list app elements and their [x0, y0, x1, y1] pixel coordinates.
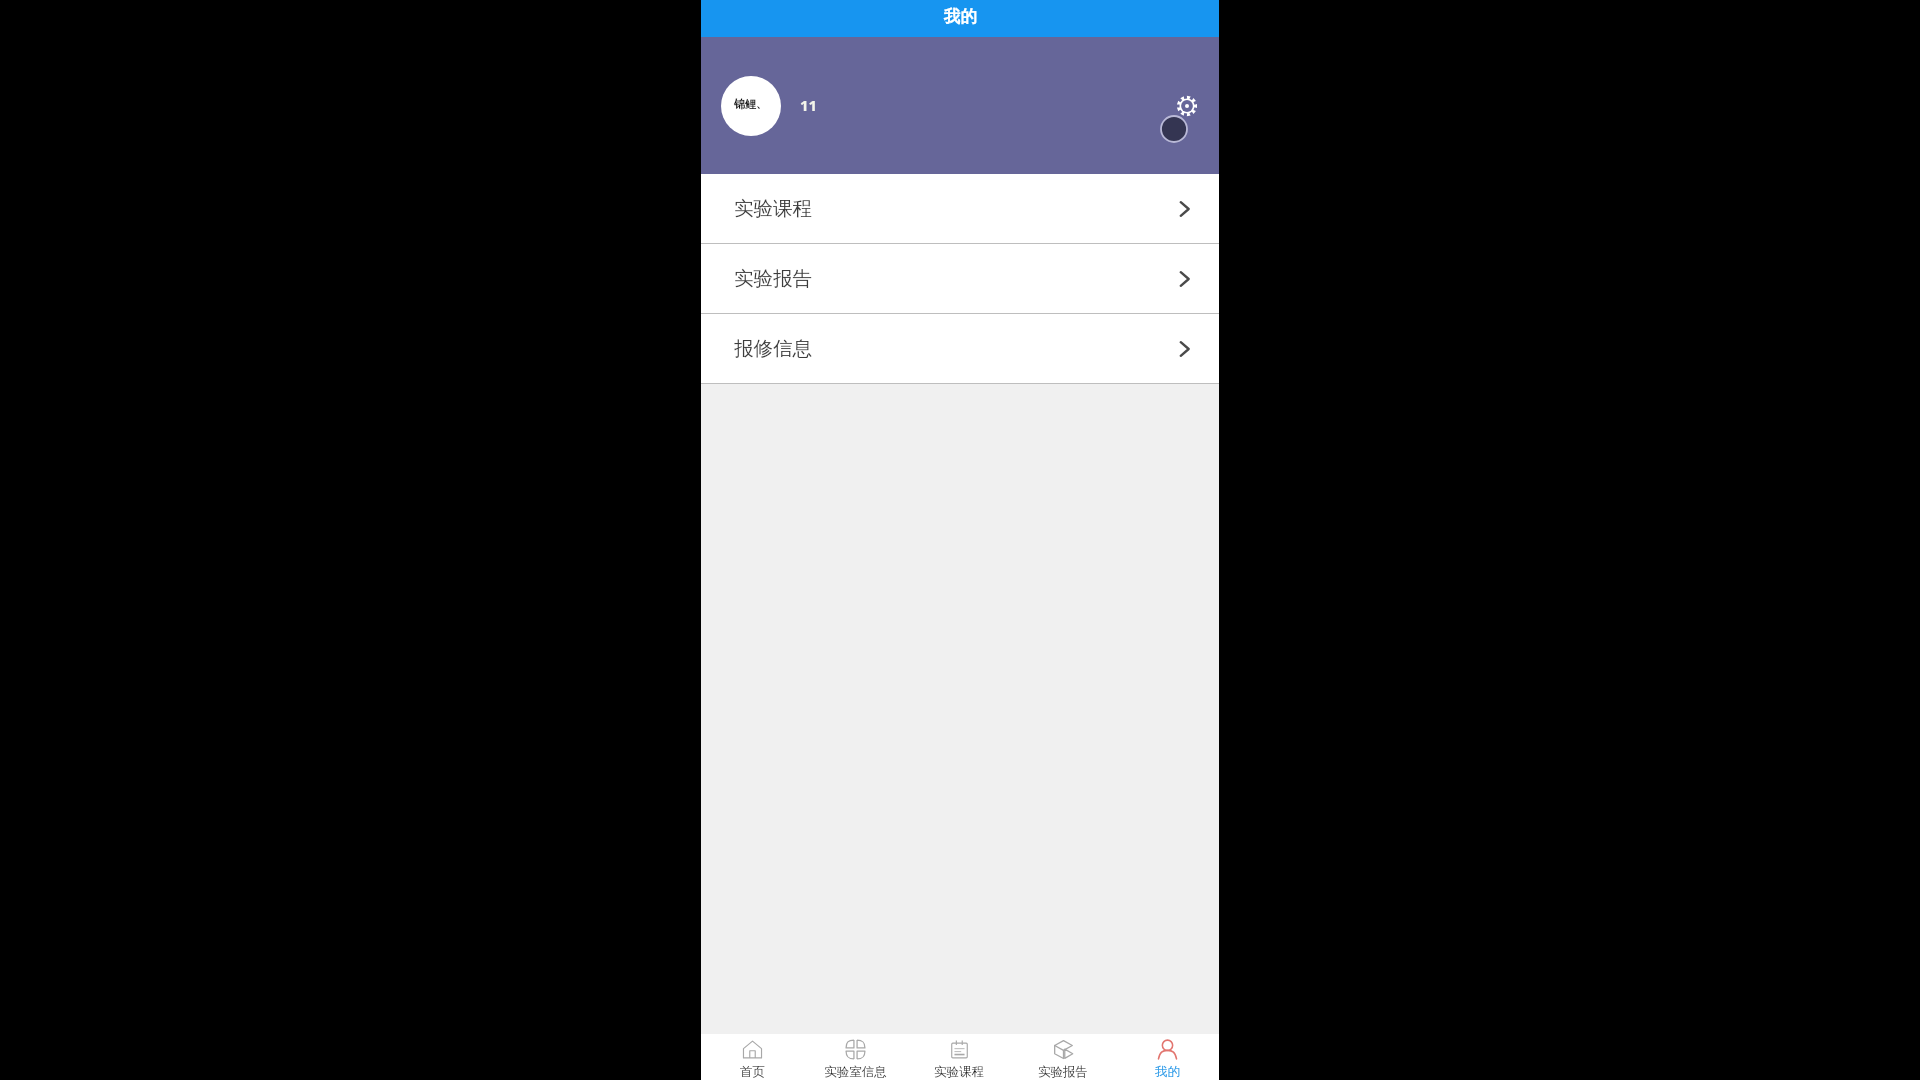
button[interactable]: 我的 [1115, 1034, 1219, 1080]
button[interactable]: 实验报告 [1011, 1034, 1115, 1080]
staticText: 实验课程 [734, 196, 812, 221]
staticText: 实验室信息 [824, 1064, 887, 1080]
staticText: 报修信息 [734, 336, 812, 361]
button[interactable]: 实验课程 [701, 174, 1219, 243]
button[interactable]: 实验课程 [907, 1034, 1011, 1080]
staticText: 实验报告 [734, 266, 812, 291]
staticText: 我的 [944, 6, 977, 27]
staticText: 锦鲤、 [734, 97, 767, 111]
staticText: 11 [800, 95, 818, 115]
button[interactable]: 首页 [701, 1034, 804, 1080]
staticText: 我的 [1155, 1064, 1180, 1080]
staticText: 实验课程 [934, 1064, 984, 1080]
button[interactable]: 实验报告 [701, 244, 1219, 313]
staticText: 实验报告 [1038, 1064, 1088, 1080]
button[interactable]: 实验室信息 [804, 1034, 907, 1080]
staticText: 首页 [740, 1064, 765, 1080]
button[interactable]: Settings [1156, 91, 1200, 135]
button[interactable]: Profile avatar [721, 76, 781, 136]
button[interactable]: 报修信息 [701, 314, 1219, 383]
